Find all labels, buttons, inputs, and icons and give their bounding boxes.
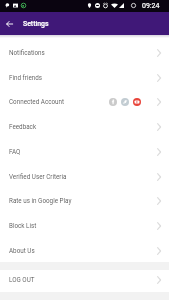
button[interactable]: Feedback xyxy=(0,114,169,139)
staticText: Find friends xyxy=(9,74,43,81)
button[interactable]: Back xyxy=(0,12,19,35)
button[interactable]: FAQ xyxy=(0,139,169,164)
button[interactable]: Connected Account xyxy=(0,89,169,114)
staticText: About Us xyxy=(9,247,35,254)
button[interactable]: Notifications xyxy=(0,40,169,65)
staticText: FAQ xyxy=(9,148,21,155)
staticText: Block List xyxy=(9,222,37,229)
staticText: Rate us in Google Play xyxy=(9,197,72,204)
staticText: Verified User Criteria xyxy=(9,173,67,180)
staticText: Settings xyxy=(23,20,49,28)
button[interactable]: Block List xyxy=(0,213,169,238)
button[interactable]: Facebook xyxy=(109,98,117,106)
button[interactable]: Twitter xyxy=(121,98,129,106)
button[interactable]: Rate us in Google Play xyxy=(0,188,169,213)
button[interactable]: LOG OUT xyxy=(0,271,169,288)
staticText: 09:24 xyxy=(142,2,160,10)
staticText: Feedback xyxy=(9,123,37,130)
button[interactable]: About Us xyxy=(0,238,169,263)
button[interactable]: YouTube xyxy=(133,98,141,106)
staticText: LOG OUT xyxy=(9,276,35,283)
staticText: Connected Account xyxy=(9,98,65,105)
staticText: Notifications xyxy=(9,49,45,56)
button[interactable]: Verified User Criteria xyxy=(0,164,169,189)
button[interactable]: Find friends xyxy=(0,65,169,90)
